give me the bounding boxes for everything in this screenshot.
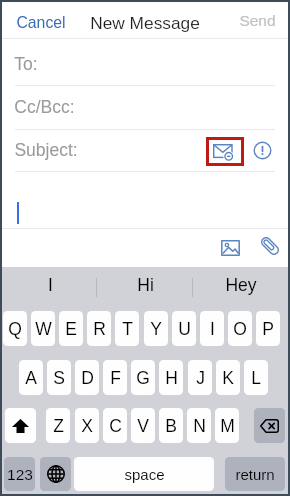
staticText: V <box>137 416 149 436</box>
staticText: return <box>235 466 275 483</box>
staticText: E <box>65 319 77 339</box>
button[interactable]: return <box>225 457 285 491</box>
button[interactable]: M <box>215 408 239 443</box>
button[interactable]: Mark as unread <box>206 137 244 166</box>
button[interactable]: J <box>188 360 212 395</box>
staticText: X <box>81 416 93 436</box>
button[interactable]: G <box>131 360 155 395</box>
button[interactable]: X <box>75 408 99 443</box>
button[interactable]: space <box>74 457 214 491</box>
staticText: Send <box>239 12 276 29</box>
button[interactable]: R <box>87 311 111 346</box>
button[interactable]: S <box>47 360 71 395</box>
staticText: T <box>122 319 133 339</box>
staticText: Cc/Bcc: <box>14 97 75 117</box>
button[interactable]: K <box>216 360 240 395</box>
staticText: Hi <box>137 275 154 295</box>
staticText: W <box>35 319 52 339</box>
button[interactable]: Backspace <box>254 408 285 443</box>
staticText: J <box>196 368 205 388</box>
staticText: M <box>220 416 235 436</box>
staticText: Z <box>53 416 64 436</box>
button[interactable]: Q <box>3 311 27 346</box>
button[interactable]: F <box>103 360 127 395</box>
staticText: C <box>109 416 122 436</box>
staticText: I <box>48 275 53 295</box>
button[interactable]: H <box>159 360 183 395</box>
button[interactable]: Cc/Bcc: <box>2 94 288 120</box>
button[interactable]: C <box>103 408 127 443</box>
staticText: B <box>165 416 177 436</box>
staticText: P <box>262 319 274 339</box>
staticText: Q <box>8 319 22 339</box>
button[interactable]: Send <box>233 5 282 36</box>
staticText: N <box>193 416 206 436</box>
button[interactable]: Cancel <box>10 7 72 38</box>
button[interactable]: Y <box>144 311 168 346</box>
button[interactable]: D <box>75 360 99 395</box>
staticText: Subject: <box>14 140 78 160</box>
button[interactable]: More info <box>251 139 273 161</box>
staticText: U <box>178 319 191 339</box>
staticText: H <box>165 368 178 388</box>
staticText: Y <box>150 319 162 339</box>
staticText: To: <box>14 54 38 74</box>
button[interactable]: Shift <box>5 408 36 443</box>
button[interactable]: Z <box>46 408 70 443</box>
staticText: New Message <box>90 13 200 32</box>
button[interactable]: I <box>200 311 224 346</box>
button[interactable]: Hi <box>98 267 193 303</box>
button[interactable]: O <box>228 311 252 346</box>
staticText: Hey <box>225 275 257 295</box>
button[interactable]: W <box>31 311 55 346</box>
staticText: O <box>233 319 247 339</box>
staticText: L <box>251 368 261 388</box>
button[interactable]: Subject: <box>2 137 288 163</box>
button[interactable]: Hey <box>193 267 288 303</box>
button[interactable]: N <box>187 408 211 443</box>
button[interactable]: U <box>172 311 196 346</box>
staticText: I <box>210 319 215 339</box>
button[interactable]: Insert photo <box>217 235 243 261</box>
button[interactable]: T <box>115 311 139 346</box>
button[interactable]: I <box>2 267 98 303</box>
button[interactable]: L <box>244 360 268 395</box>
staticText: A <box>25 368 37 388</box>
button[interactable]: V <box>131 408 155 443</box>
staticText: F <box>110 368 121 388</box>
staticText: G <box>136 368 150 388</box>
button[interactable]: P <box>256 311 280 346</box>
staticText: 123 <box>7 466 33 483</box>
staticText: space <box>124 466 165 483</box>
button[interactable]: Attach file <box>257 233 283 259</box>
button[interactable]: To: <box>2 51 288 77</box>
staticText: K <box>222 368 234 388</box>
button[interactable]: B <box>159 408 183 443</box>
staticText: S <box>53 368 65 388</box>
staticText: D <box>81 368 94 388</box>
button[interactable]: Switch keyboard <box>40 457 71 491</box>
staticText: R <box>93 319 106 339</box>
button[interactable]: 123 <box>4 457 35 491</box>
button[interactable]: A <box>19 360 43 395</box>
staticText: Cancel <box>16 14 66 32</box>
button[interactable]: E <box>59 311 83 346</box>
